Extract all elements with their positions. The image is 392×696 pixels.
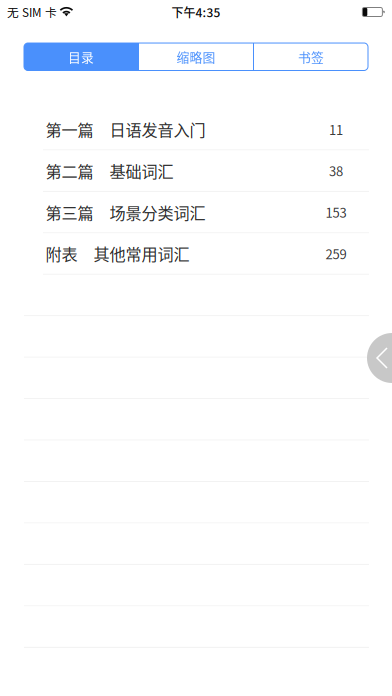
staticText: 153 [325,203,346,222]
button[interactable]: 第三篇 场景分类词汇 [0,192,392,233]
staticText: 11 [329,120,343,139]
staticText: 目录 [68,47,94,66]
button[interactable]: 书签 [254,43,368,70]
staticText: 第三篇 场景分类词汇 [45,200,205,224]
staticText: 无 SIM 卡 [7,3,57,20]
staticText: 第二篇 基础词汇 [45,159,173,182]
staticText: 缩略图 [176,47,215,66]
button[interactable]: 缩略图 [139,43,253,70]
staticText: 书签 [298,47,324,66]
staticText: 38 [329,161,343,180]
button[interactable]: 目录 [24,43,138,70]
staticText: 第一篇 日语发音入门 [45,117,205,141]
button[interactable]: 附表 其他常用词汇 [0,233,392,275]
button[interactable]: 第二篇 基础词汇 [0,150,392,192]
staticText: 附表 其他常用词汇 [45,242,189,265]
button[interactable]: Previous page [367,333,392,383]
button[interactable]: 第一篇 日语发音入门 [0,109,392,150]
staticText: 259 [325,244,346,263]
staticText: 下午4:35 [171,3,220,21]
